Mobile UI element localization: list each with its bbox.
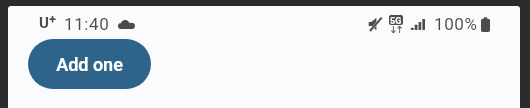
staticText: 5G [390,16,402,25]
staticText: U [39,14,49,32]
other: 5G data [389,15,403,33]
other: Cloud sync [118,20,135,29]
button[interactable]: Add one [28,39,151,89]
other: Battery full [481,17,490,32]
staticText: 100% [434,14,478,34]
staticText: + [49,12,57,27]
other: Signal strength [411,19,425,30]
other: Ringer muted [368,17,382,31]
staticText: Add one [56,54,123,75]
staticText: 11:40 [64,14,110,34]
